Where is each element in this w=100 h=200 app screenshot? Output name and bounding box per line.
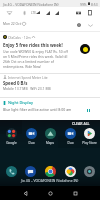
staticText: Mobile 13.7 MB WiFi 23.1 MB: [3, 86, 51, 91]
button[interactable]: Security: [22, 22, 26, 26]
button[interactable]: Pause: [84, 107, 93, 113]
button[interactable]: Battery: [88, 10, 92, 15]
button[interactable]: Reading mode: [76, 11, 81, 15]
staticText: Blue light filter will be active until 8…: [3, 107, 72, 112]
button[interactable]: Expand: [88, 24, 93, 27]
button[interactable]: Photos: [65, 166, 76, 177]
button[interactable]: CLEAR ALL: [69, 120, 94, 127]
button[interactable]: Chrome: [45, 166, 56, 177]
staticText: 99%: [80, 2, 87, 6]
staticText: Enjoy 5 free rides this week!: [3, 42, 63, 48]
button[interactable]: Duo: [22, 128, 40, 145]
staticText: Duo: [28, 141, 35, 145]
staticText: CLEAR ALL: [72, 121, 90, 126]
button[interactable]: OlaCabs: [0, 32, 100, 73]
button[interactable]: Night Display: [0, 98, 100, 120]
staticText: 8:53: [91, 2, 98, 6]
button[interactable]: Camera: [84, 166, 95, 177]
staticText: · 12m: [22, 35, 31, 39]
staticText: Internet Speed Meter Lite: [8, 75, 48, 79]
button[interactable]: Signal 3: [55, 11, 59, 15]
button[interactable]: Duo: [61, 128, 79, 145]
staticText: LTE: [31, 11, 36, 15]
button[interactable]: Signal: [36, 11, 40, 14]
button[interactable]: Recents: [67, 186, 83, 200]
button[interactable]: Settings: [77, 23, 81, 27]
staticText: Night Display: [8, 100, 33, 105]
staticText: Jio 4G – VODAFONEIN (Vodafone IN): [21, 178, 79, 183]
button[interactable]: Wi-Fi: [7, 11, 12, 15]
button[interactable]: Maps: [41, 128, 59, 145]
staticText: Mon 22 Oct: [3, 21, 21, 25]
button[interactable]: Back: [17, 186, 33, 200]
staticText: OlaCabs: [8, 35, 21, 39]
button[interactable]: Play Store: [80, 128, 98, 145]
button[interactable]: Google: [2, 128, 20, 145]
staticText: Play Store: [82, 141, 97, 145]
staticText: Speed 0 B/s: [3, 80, 28, 86]
button[interactable]: Bluetooth: [23, 11, 26, 15]
staticText: Jio 4G – VODAFONEIN (Vodafone IN): [3, 2, 59, 6]
button[interactable]: Phone: [6, 166, 17, 177]
staticText: Duo: [67, 141, 74, 145]
button[interactable]: Messages: [25, 166, 36, 177]
button[interactable]: Internet Speed Meter Lite: [0, 74, 100, 97]
staticText: Maps: [46, 141, 54, 145]
button[interactable]: Home: [42, 186, 58, 200]
staticText: Google: [6, 141, 17, 145]
button[interactable]: Signal 2: [46, 11, 50, 15]
staticText: Use code WOW50 & enjoy FLAT Rs. 50 off o…: [3, 49, 72, 69]
